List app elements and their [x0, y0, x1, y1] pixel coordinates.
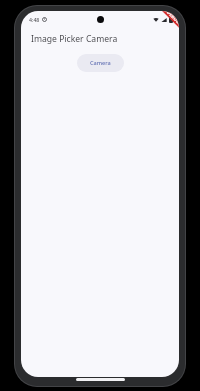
staticText: 4:48 [29, 16, 40, 23]
button[interactable]: Camera [77, 54, 124, 72]
staticText: Camera [90, 59, 111, 67]
staticText: DEBUG [166, 11, 179, 25]
staticText: Image Picker Camera [31, 33, 118, 45]
